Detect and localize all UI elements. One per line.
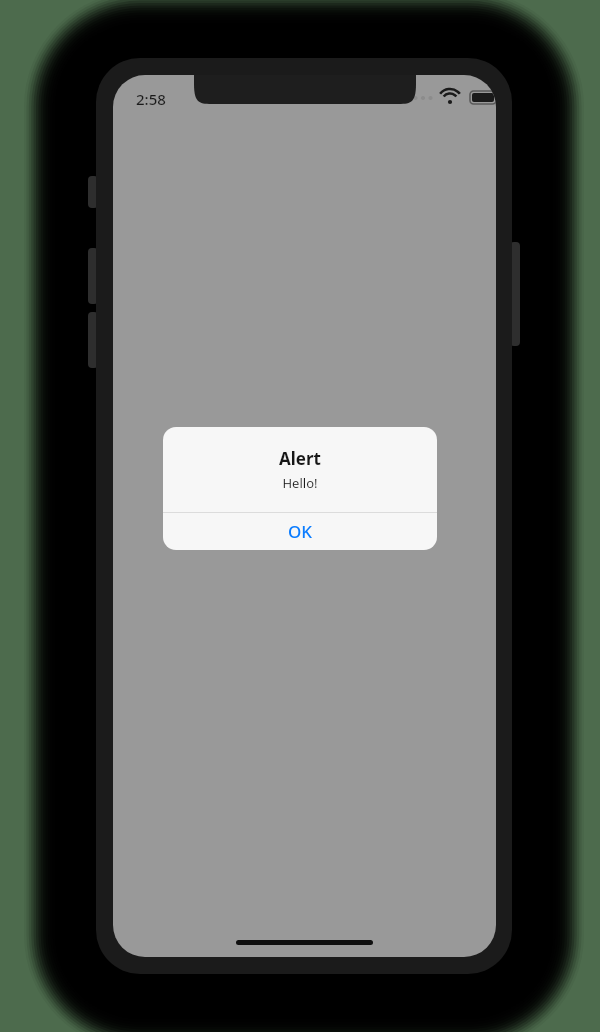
staticText: 2:58	[136, 89, 166, 109]
button[interactable]: OK	[163, 513, 437, 550]
staticText: OK	[288, 520, 313, 543]
staticText: Alert	[279, 447, 321, 470]
staticText: Hello!	[282, 474, 318, 492]
other: Home indicator	[236, 940, 373, 945]
